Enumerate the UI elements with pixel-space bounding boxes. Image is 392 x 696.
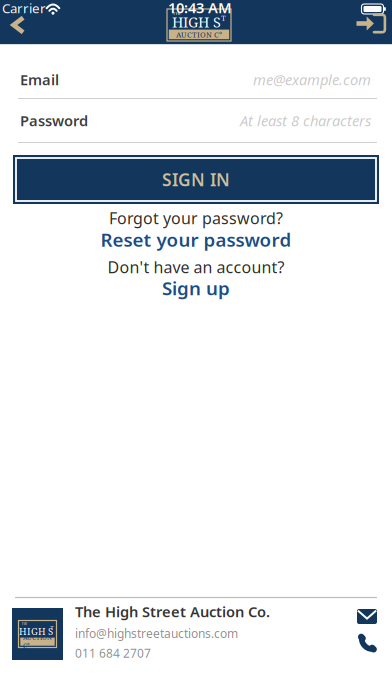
button[interactable]: Reset your password (100, 229, 291, 250)
staticText: Don't have an account? (107, 256, 284, 278)
button[interactable]: Back (5, 12, 31, 38)
button[interactable]: SIGN IN (13, 155, 379, 204)
staticText: Password (20, 111, 88, 130)
button[interactable]: Email (0, 61, 392, 98)
staticText: Carrier (2, 0, 46, 17)
staticText: AUCTION C° (176, 29, 222, 40)
staticText: HIGH S (19, 625, 53, 638)
staticText: T (50, 625, 53, 631)
staticText: info@highstreetauctions.com (75, 625, 238, 641)
staticText: Email (20, 70, 59, 89)
button[interactable]: Password (0, 99, 392, 142)
staticText: SIGN IN (162, 168, 230, 191)
staticText: me@example.com (253, 70, 371, 89)
button[interactable]: Sign in (354, 11, 387, 35)
staticText: THE (22, 622, 28, 626)
button[interactable]: Call us (355, 633, 379, 653)
staticText: At least 8 characters (240, 111, 371, 130)
staticText: Sign up (162, 276, 230, 300)
staticText: THE (173, 10, 182, 16)
staticText: T (221, 13, 225, 23)
staticText: AUCTION C° (23, 633, 52, 650)
button[interactable]: Sign up (162, 278, 230, 298)
staticText: Forgot your password? (109, 207, 283, 229)
staticText: The High Street Auction Co. (75, 602, 270, 621)
button[interactable]: The High Street Auction Co. (12, 608, 63, 660)
staticText: 011 684 2707 (75, 645, 151, 661)
button[interactable]: Email us (355, 607, 379, 625)
staticText: HIGH S (172, 12, 221, 32)
staticText: 10:43 AM (168, 0, 232, 17)
staticText: Reset your password (100, 227, 291, 252)
